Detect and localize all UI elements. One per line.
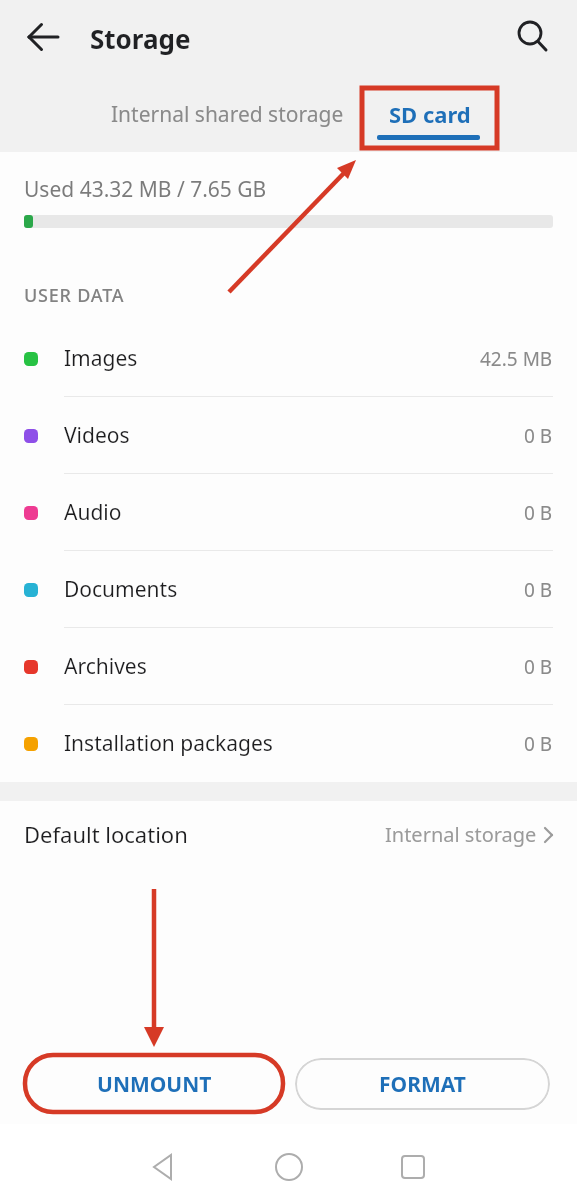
staticText: 0 B — [524, 731, 553, 757]
staticText: Audio — [64, 498, 122, 527]
button[interactable]: Videos — [0, 397, 577, 474]
staticText: Used 43.32 MB / 7.65 GB — [24, 175, 267, 204]
staticText: 0 B — [524, 423, 553, 449]
staticText: 0 B — [524, 654, 553, 680]
button[interactable] — [506, 10, 558, 62]
button[interactable]: Archives — [0, 628, 577, 705]
button[interactable]: Internal shared storage — [85, 88, 370, 140]
button[interactable]: UNMOUNT — [28, 1058, 281, 1110]
staticText: Internal storage — [385, 821, 537, 848]
staticText: SD card — [389, 99, 471, 129]
button[interactable] — [365, 1134, 461, 1200]
staticText: UNMOUNT — [97, 1070, 212, 1099]
staticText: Default location — [24, 819, 188, 849]
button[interactable]: Default location — [0, 801, 577, 867]
staticText: Archives — [64, 652, 147, 681]
button[interactable] — [20, 13, 68, 61]
staticText: FORMAT — [379, 1070, 466, 1099]
button[interactable]: Images — [0, 320, 577, 397]
staticText: 42.5 MB — [480, 346, 553, 372]
staticText: Documents — [64, 575, 178, 604]
button[interactable]: SD card — [368, 88, 492, 140]
button[interactable]: FORMAT — [295, 1058, 550, 1110]
button[interactable] — [241, 1134, 337, 1200]
staticText: Videos — [64, 421, 130, 450]
button[interactable] — [117, 1134, 213, 1200]
button[interactable]: Installation packages — [0, 705, 577, 782]
staticText: Storage — [90, 21, 191, 56]
button[interactable]: Audio — [0, 474, 577, 551]
staticText: 0 B — [524, 577, 553, 603]
staticText: Internal shared storage — [111, 100, 344, 129]
button[interactable]: Documents — [0, 551, 577, 628]
staticText: USER DATA — [24, 283, 125, 308]
staticText: Images — [64, 344, 138, 373]
staticText: 0 B — [524, 500, 553, 526]
staticText: Installation packages — [64, 729, 273, 758]
